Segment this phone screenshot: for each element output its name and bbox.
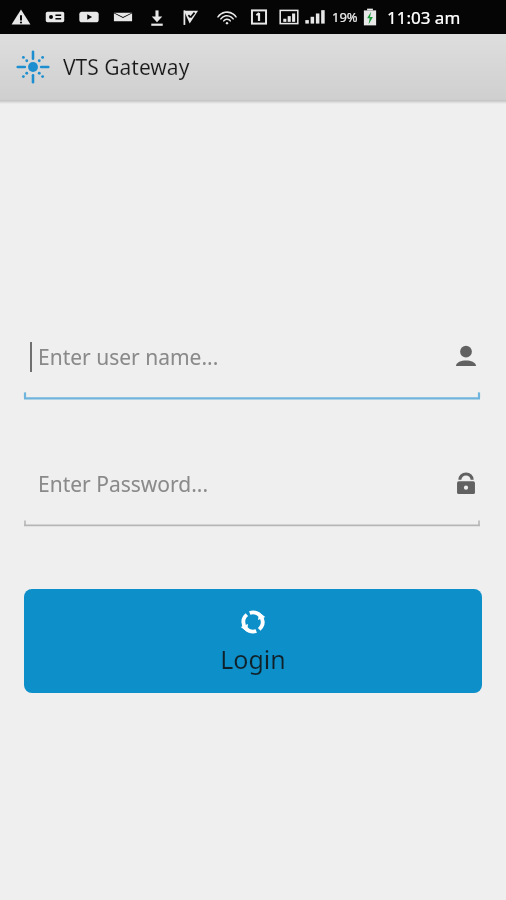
- other: User: [452, 343, 480, 371]
- other: Password: [452, 470, 480, 498]
- button[interactable]: Enter user name...: [24, 334, 480, 402]
- staticText: Enter Password...: [38, 470, 209, 499]
- staticText: Login: [220, 642, 286, 676]
- button[interactable]: Enter Password...: [24, 461, 480, 529]
- staticText: 19%: [332, 8, 358, 26]
- staticText: VTS Gateway: [63, 53, 190, 82]
- staticText: Enter user name...: [38, 343, 219, 372]
- button[interactable]: Login: [24, 589, 482, 693]
- staticText: 11:03 am: [387, 6, 461, 29]
